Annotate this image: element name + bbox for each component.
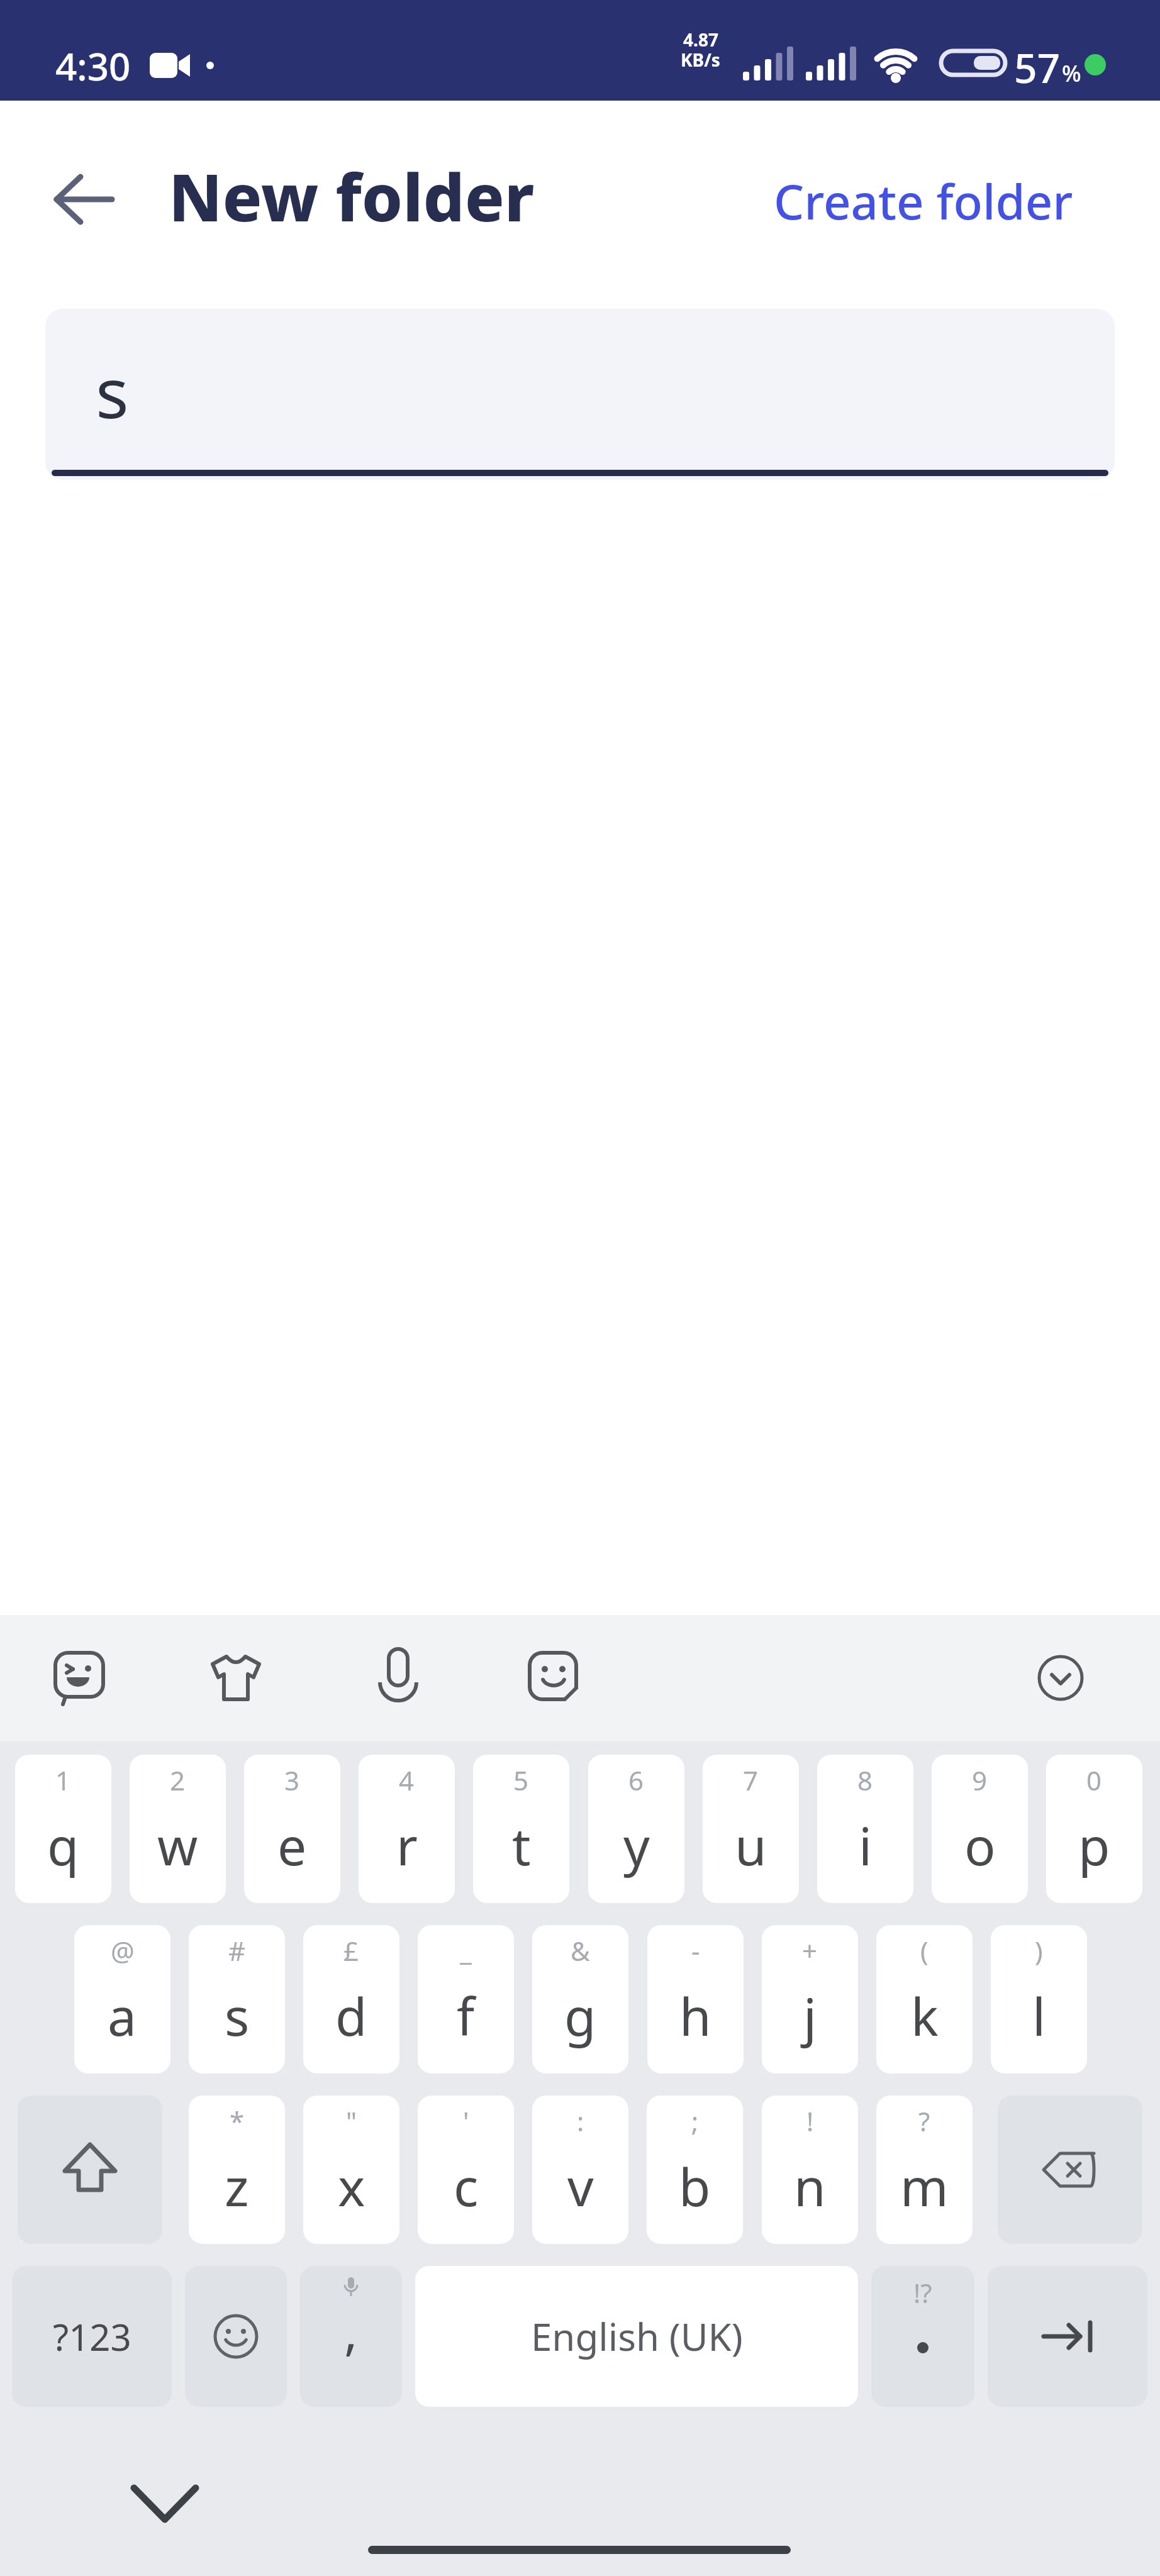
button[interactable]: 5 bbox=[473, 1755, 569, 1903]
staticText: j bbox=[803, 1980, 817, 2051]
staticText: ) bbox=[1035, 1933, 1043, 1968]
button[interactable]: , bbox=[300, 2266, 402, 2407]
button[interactable]: ' bbox=[418, 2096, 514, 2244]
button[interactable]: 9 bbox=[932, 1755, 1028, 1903]
staticText: % bbox=[1062, 58, 1081, 89]
button[interactable]: !? bbox=[871, 2266, 974, 2407]
staticText: ' bbox=[463, 2103, 469, 2139]
staticText: o bbox=[964, 1810, 996, 1880]
staticText: Create folder bbox=[774, 169, 1073, 234]
button[interactable]: ) bbox=[991, 1925, 1087, 2074]
button[interactable] bbox=[44, 162, 120, 237]
button[interactable]: 2 bbox=[130, 1755, 226, 1903]
staticText: x bbox=[338, 2151, 365, 2221]
staticText: t bbox=[512, 1810, 531, 1880]
staticText: @ bbox=[111, 1933, 135, 1968]
button[interactable]: 6 bbox=[588, 1755, 684, 1903]
button[interactable]: : bbox=[532, 2096, 628, 2244]
staticText: KB/s bbox=[681, 48, 720, 72]
staticText: 8 bbox=[857, 1762, 873, 1798]
button[interactable]: ( bbox=[876, 1925, 973, 2074]
staticText: r bbox=[396, 1810, 418, 1880]
staticText: New folder bbox=[169, 152, 535, 241]
staticText: g bbox=[564, 1980, 596, 2051]
staticText: d bbox=[335, 1980, 367, 2051]
button[interactable]: 8 bbox=[817, 1755, 913, 1903]
button[interactable]: + bbox=[762, 1925, 858, 2074]
staticText: ? bbox=[918, 2103, 930, 2139]
staticText: l bbox=[1032, 1980, 1046, 2051]
staticText: m bbox=[900, 2151, 949, 2221]
button[interactable]: 3 bbox=[244, 1755, 340, 1903]
button[interactable]: @ bbox=[74, 1925, 170, 2074]
button[interactable]: Create folder bbox=[774, 169, 1073, 234]
staticText: ?123 bbox=[53, 2312, 131, 2362]
staticText: i bbox=[859, 1810, 873, 1880]
staticText: + bbox=[802, 1933, 818, 1968]
button[interactable]: 4 bbox=[359, 1755, 455, 1903]
button[interactable]: 7 bbox=[703, 1755, 799, 1903]
staticText: 0 bbox=[1086, 1762, 1102, 1798]
button[interactable] bbox=[185, 2266, 287, 2407]
staticText: f bbox=[457, 1980, 475, 2051]
staticText: q bbox=[47, 1810, 79, 1880]
staticText: & bbox=[571, 1933, 590, 1968]
button[interactable] bbox=[998, 2096, 1142, 2244]
staticText: * bbox=[230, 2103, 245, 2139]
staticText: b bbox=[679, 2151, 711, 2221]
staticText: 57 bbox=[1014, 40, 1061, 95]
staticText: , bbox=[344, 2296, 358, 2365]
button[interactable]: & bbox=[532, 1925, 628, 2074]
staticText: - bbox=[691, 1933, 700, 1968]
button[interactable]: ?123 bbox=[12, 2266, 172, 2407]
staticText: 5 bbox=[513, 1762, 529, 1798]
staticText: k bbox=[911, 1980, 939, 2051]
staticText: u bbox=[735, 1810, 767, 1880]
button[interactable]: * bbox=[189, 2096, 285, 2244]
button[interactable]: 0 bbox=[1046, 1755, 1142, 1903]
staticText: w bbox=[157, 1810, 198, 1880]
staticText: v bbox=[567, 2151, 594, 2221]
button[interactable]: # bbox=[189, 1925, 285, 2074]
button[interactable]: ? bbox=[876, 2096, 973, 2244]
button[interactable]: £ bbox=[303, 1925, 399, 2074]
staticText: 4.87 bbox=[683, 28, 718, 52]
staticText: " bbox=[346, 2103, 357, 2139]
button[interactable]: - bbox=[647, 1925, 744, 2074]
staticText: e bbox=[277, 1810, 307, 1880]
button[interactable] bbox=[988, 2266, 1147, 2407]
staticText: z bbox=[225, 2151, 249, 2221]
staticText: s bbox=[225, 1980, 250, 2051]
staticText: 1 bbox=[55, 1762, 71, 1798]
staticText: p bbox=[1078, 1810, 1110, 1880]
button[interactable] bbox=[129, 2479, 201, 2536]
button[interactable] bbox=[18, 2096, 162, 2244]
staticText: English (UK) bbox=[531, 2311, 743, 2362]
button[interactable]: ! bbox=[762, 2096, 858, 2244]
staticText: ( bbox=[920, 1933, 929, 1968]
staticText: c bbox=[454, 2151, 479, 2221]
staticText: 9 bbox=[972, 1762, 988, 1798]
button[interactable] bbox=[208, 1649, 264, 1706]
button[interactable] bbox=[370, 1645, 427, 1708]
button[interactable] bbox=[52, 1649, 108, 1706]
button[interactable]: ; bbox=[647, 2096, 743, 2244]
staticText: a bbox=[108, 1980, 137, 2051]
button[interactable]: _ bbox=[418, 1925, 514, 2074]
staticText: n bbox=[794, 2151, 826, 2221]
staticText: ! bbox=[806, 2103, 814, 2139]
button[interactable]: 1 bbox=[15, 1755, 111, 1903]
button[interactable]: English (UK) bbox=[415, 2266, 858, 2407]
staticText: 7 bbox=[743, 1762, 759, 1798]
button[interactable]: " bbox=[303, 2096, 399, 2244]
staticText: h bbox=[679, 1980, 711, 2051]
staticText: 6 bbox=[628, 1762, 644, 1798]
staticText: _ bbox=[460, 1933, 472, 1968]
button[interactable]: s bbox=[45, 309, 1115, 480]
staticText: ; bbox=[691, 2103, 699, 2139]
staticText: : bbox=[577, 2103, 584, 2139]
staticText: 2 bbox=[170, 1762, 186, 1798]
staticText: 3 bbox=[284, 1762, 300, 1798]
button[interactable] bbox=[526, 1649, 583, 1706]
button[interactable] bbox=[1037, 1654, 1085, 1702]
